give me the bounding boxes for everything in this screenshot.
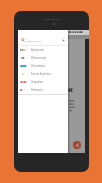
staticText: Hovstein <box>31 88 43 92</box>
staticText: Deliverance <box>31 56 47 60</box>
button[interactable]: Hovstein <box>18 86 68 94</box>
button[interactable]: Guardian <box>18 78 68 86</box>
button[interactable]: Deliverance <box>18 54 68 62</box>
button[interactable]: Search Store <box>18 35 68 45</box>
staticText: Desolation <box>31 64 46 68</box>
staticText: Search Store <box>27 39 42 42</box>
staticText: Guardian <box>31 80 44 84</box>
staticText: Forest Essentia <box>31 72 51 76</box>
button[interactable]: Desolation <box>18 62 68 70</box>
button[interactable]: Share <box>73 141 81 149</box>
button[interactable]: Bystander <box>18 46 68 54</box>
staticText: Bystander <box>31 48 45 52</box>
button[interactable]: Forest Essentia <box>18 70 68 78</box>
